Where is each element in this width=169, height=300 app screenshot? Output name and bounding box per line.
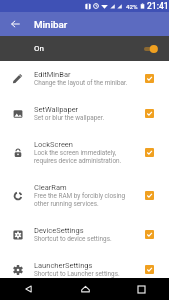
button[interactable]: SetWallpaper — [0, 96, 169, 131]
staticText: Change the layout of the minibar. — [34, 79, 128, 87]
staticText: SetWallpaper — [34, 105, 79, 114]
staticText: Free the RAM by forcibly closing — [34, 192, 126, 200]
staticText: ClearRam — [34, 183, 67, 192]
button[interactable]: Home — [57, 278, 113, 300]
staticText: EditMinBar — [34, 70, 71, 79]
staticText: Minibar — [34, 19, 68, 30]
button[interactable]: Enable SetWallpaper — [145, 109, 154, 118]
button[interactable]: Recent apps — [113, 278, 169, 300]
staticText: Shortcut to Launcher settings. — [34, 270, 120, 278]
button[interactable]: Enable ClearRam — [145, 191, 154, 200]
staticText: requires device administration. — [34, 157, 122, 165]
button[interactable]: Navigate up — [0, 12, 30, 36]
button[interactable]: DeviceSettings — [0, 217, 169, 252]
button[interactable]: Back — [0, 278, 57, 300]
button[interactable]: LockScreen — [0, 131, 169, 174]
staticText: Set or blur the wallpaper. — [34, 114, 105, 122]
staticText: LockScreen — [34, 140, 73, 149]
button[interactable]: Enable EditMinBar — [145, 74, 154, 83]
staticText: Lock the screen immediately, — [34, 149, 117, 157]
button[interactable]: EditMinBar — [0, 61, 169, 96]
staticText: On — [34, 44, 44, 53]
button[interactable]: LauncherSettings — [0, 252, 169, 287]
button[interactable]: ClearRam — [0, 174, 169, 217]
staticText: Shortcut to device settings. — [34, 235, 112, 243]
staticText: 42% — [126, 3, 138, 10]
button[interactable]: Enable LauncherSettings — [145, 265, 154, 274]
staticText: DeviceSettings — [34, 226, 84, 235]
button[interactable]: Enable DeviceSettings — [145, 230, 154, 239]
staticText: 21:41 — [147, 1, 169, 11]
button[interactable]: Enable LockScreen — [145, 148, 154, 157]
staticText: other running services. — [34, 200, 99, 208]
button[interactable]: On — [0, 36, 169, 61]
staticText: LauncherSettings — [34, 261, 93, 270]
